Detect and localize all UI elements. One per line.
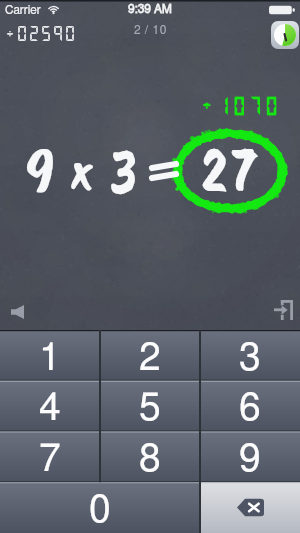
button[interactable]: Backspace xyxy=(200,482,300,533)
staticText: 7 xyxy=(39,440,61,479)
staticText: Carrier xyxy=(5,4,41,16)
button[interactable]: 4 xyxy=(0,380,100,431)
staticText: 4 xyxy=(39,389,61,428)
button[interactable]: 2 xyxy=(100,330,200,380)
staticText: 27 xyxy=(201,130,262,211)
staticText: 3 xyxy=(239,339,261,378)
button[interactable]: 0 xyxy=(0,482,200,533)
staticText: 1 xyxy=(39,339,61,378)
button[interactable]: Exit xyxy=(268,295,298,325)
staticText: ÷1070 xyxy=(200,94,281,116)
staticText: 8 xyxy=(139,440,161,479)
button[interactable]: 5 xyxy=(100,380,200,431)
staticText: 2 / 10 xyxy=(134,24,167,36)
staticText: 5 xyxy=(139,389,161,428)
button[interactable]: 1 xyxy=(0,330,100,380)
staticText: ÷02590 xyxy=(4,23,77,42)
staticText: x xyxy=(70,129,95,205)
button[interactable]: 9 xyxy=(200,431,300,482)
staticText: 9:39 AM xyxy=(128,3,172,15)
staticText: 9 xyxy=(239,440,261,479)
button[interactable]: 7 xyxy=(0,431,100,482)
staticText: 2 xyxy=(139,339,161,378)
button[interactable]: 6 xyxy=(200,380,300,431)
staticText: 3 xyxy=(110,131,138,213)
button[interactable]: 8 xyxy=(100,431,200,482)
button[interactable]: Sound xyxy=(2,297,32,327)
staticText: 6 xyxy=(239,389,261,428)
button[interactable]: 3 xyxy=(200,330,300,380)
staticText: 0 xyxy=(89,491,111,530)
staticText: 9 xyxy=(26,131,56,210)
button[interactable]: Timer xyxy=(271,21,299,49)
